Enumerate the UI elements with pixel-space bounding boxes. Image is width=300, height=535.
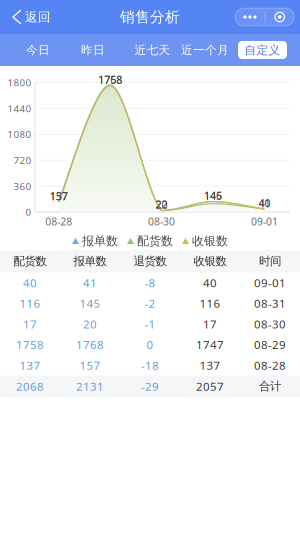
staticText: 360 bbox=[13, 179, 31, 193]
staticText: -2 bbox=[144, 296, 155, 311]
staticText: 08-29 bbox=[254, 337, 286, 352]
button[interactable]: 近一个月 bbox=[177, 34, 233, 66]
staticText: 1080 bbox=[7, 128, 31, 141]
staticText: 合计 bbox=[259, 379, 281, 393]
staticText: 近七天 bbox=[134, 43, 170, 57]
staticText: 今日 bbox=[26, 43, 50, 57]
staticText: 近一个月 bbox=[181, 43, 229, 57]
staticText: 157 bbox=[79, 357, 100, 373]
staticText: -18 bbox=[141, 357, 159, 373]
staticText: 收银数 bbox=[192, 234, 228, 248]
staticText: 1800 bbox=[7, 76, 31, 89]
staticText: 0 bbox=[146, 337, 153, 352]
staticText: 配货数 bbox=[137, 234, 173, 248]
staticText: 09-01 bbox=[254, 275, 286, 291]
staticText: 2057 bbox=[196, 378, 224, 394]
staticText: 昨日 bbox=[81, 43, 105, 57]
staticText: 08-28 bbox=[45, 214, 72, 229]
staticText: 1758 bbox=[98, 72, 122, 87]
staticText: 08-31 bbox=[254, 296, 286, 311]
staticText: 时间 bbox=[259, 254, 281, 268]
staticText: 自定义 bbox=[244, 43, 280, 57]
staticText: 1440 bbox=[7, 102, 31, 115]
staticText: 返回 bbox=[25, 9, 51, 25]
staticText: 22 bbox=[156, 197, 168, 212]
staticText: 收银数 bbox=[193, 254, 226, 268]
staticText: 137 bbox=[199, 357, 220, 373]
button[interactable]: 昨日 bbox=[65, 34, 121, 66]
staticText: 08-30 bbox=[254, 316, 286, 332]
staticText: 08-30 bbox=[148, 214, 175, 229]
staticText: 40 bbox=[258, 196, 270, 210]
staticText: 40 bbox=[23, 275, 37, 291]
staticText: 20 bbox=[156, 197, 168, 212]
button[interactable]: 今日 bbox=[10, 34, 66, 66]
staticText: 145 bbox=[79, 296, 100, 311]
staticText: 137 bbox=[19, 357, 40, 373]
staticText: 退货数 bbox=[133, 254, 166, 268]
staticText: 销售分析 bbox=[120, 8, 180, 26]
staticText: 08-28 bbox=[254, 357, 286, 373]
staticText: 报单数 bbox=[82, 234, 118, 248]
staticText: 1768 bbox=[76, 337, 104, 352]
staticText: 1747 bbox=[196, 337, 224, 352]
staticText: 1768 bbox=[98, 72, 122, 87]
button[interactable]: 近七天 bbox=[124, 34, 180, 66]
staticText: 0 bbox=[25, 205, 31, 219]
button[interactable]: Close bbox=[265, 8, 294, 26]
staticText: 2131 bbox=[76, 378, 104, 394]
staticText: 1758 bbox=[16, 337, 44, 352]
staticText: 配货数 bbox=[13, 254, 46, 268]
staticText: 157 bbox=[50, 189, 68, 203]
staticText: 报单数 bbox=[73, 254, 106, 268]
staticText: -1 bbox=[144, 316, 155, 332]
staticText: 17 bbox=[23, 316, 37, 332]
staticText: 146 bbox=[204, 188, 222, 203]
staticText: 145 bbox=[204, 188, 222, 203]
staticText: 20 bbox=[83, 316, 97, 332]
staticText: 41 bbox=[258, 196, 270, 210]
staticText: 09-01 bbox=[251, 214, 278, 229]
staticText: 116 bbox=[19, 296, 40, 311]
staticText: 720 bbox=[13, 154, 31, 167]
staticText: 41 bbox=[83, 275, 97, 291]
staticText: 137 bbox=[50, 189, 68, 203]
staticText: -29 bbox=[141, 378, 159, 394]
button[interactable]: More bbox=[235, 8, 265, 26]
button[interactable]: 自定义 bbox=[238, 41, 287, 59]
staticText: 40 bbox=[203, 275, 217, 291]
staticText: 2068 bbox=[16, 378, 44, 394]
staticText: 116 bbox=[199, 296, 220, 311]
staticText: 17 bbox=[203, 316, 217, 332]
staticText: -8 bbox=[144, 275, 155, 291]
button[interactable]: 返回 bbox=[0, 0, 57, 34]
